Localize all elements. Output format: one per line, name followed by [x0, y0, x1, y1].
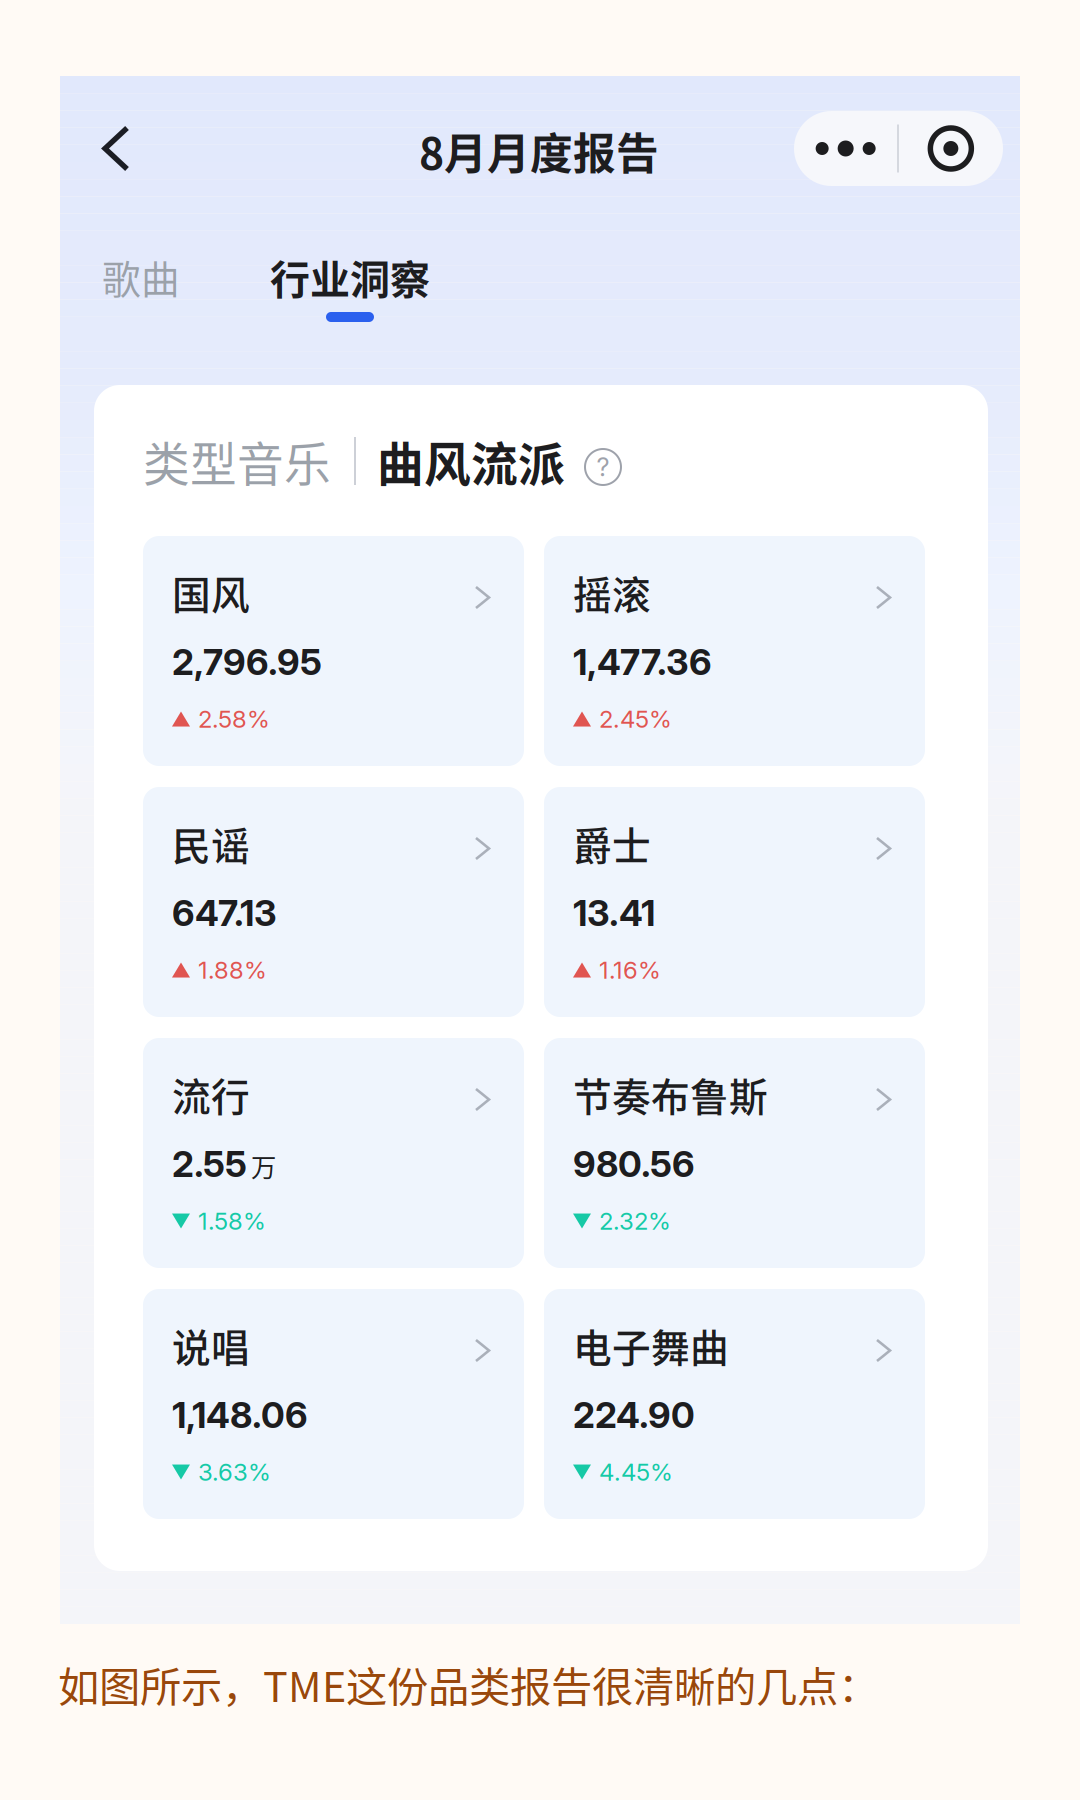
staticText: 224.90 [573, 1393, 695, 1437]
staticText: 2,796.95 [172, 640, 322, 684]
button[interactable]: More [794, 111, 897, 186]
staticText: 如图所示，TME这份品类报告很清晰的几点： [58, 1654, 879, 1714]
staticText: 说唱 [172, 1317, 250, 1373]
staticText: 980.56 [573, 1142, 695, 1186]
staticText: 2.45% [599, 704, 672, 733]
staticText: 电子舞曲 [573, 1317, 729, 1373]
staticText: 2.32% [599, 1206, 671, 1235]
staticText: 爵士 [573, 815, 651, 871]
staticText: 1.88% [198, 955, 267, 984]
staticText: 类型音乐 [143, 427, 331, 495]
staticText: 行业洞察 [270, 248, 430, 306]
button[interactable]: 民谣 [143, 787, 524, 1017]
staticText: 民谣 [172, 815, 250, 871]
staticText: 摇滚 [573, 564, 651, 620]
staticText: 13.41 [573, 891, 655, 935]
staticText: 647.13 [172, 891, 277, 935]
staticText: 4.45% [599, 1457, 673, 1486]
button[interactable]: 说唱 [143, 1289, 524, 1519]
button[interactable]: 爵士 [544, 787, 925, 1017]
staticText: 1,148.06 [172, 1393, 308, 1437]
button[interactable]: 行业洞察 [270, 250, 430, 322]
staticText: 2.55 [172, 1142, 247, 1186]
staticText: 万 [251, 1148, 276, 1184]
button[interactable]: Help [565, 424, 637, 498]
staticText: 流行 [172, 1066, 250, 1122]
staticText: 8月月度报告 [419, 120, 659, 182]
staticText: 3.63% [198, 1457, 271, 1486]
button[interactable]: 国风 [143, 536, 524, 766]
staticText: ? [596, 452, 609, 482]
button[interactable]: Close [899, 111, 1003, 186]
staticText: 歌曲 [102, 249, 180, 305]
staticText: 节奏布鲁斯 [573, 1066, 768, 1122]
staticText: 1,477.36 [573, 640, 712, 684]
staticText: 1.58% [198, 1206, 266, 1235]
button[interactable]: 摇滚 [544, 536, 925, 766]
button[interactable]: 电子舞曲 [544, 1289, 925, 1519]
staticText: 2.58% [198, 704, 270, 733]
button[interactable]: 节奏布鲁斯 [544, 1038, 925, 1268]
button[interactable]: 歌曲 [102, 250, 200, 304]
staticText: 国风 [172, 564, 250, 620]
staticText: 曲风流派 [377, 427, 565, 495]
staticText: 1.16% [599, 955, 661, 984]
button[interactable]: 流行 [143, 1038, 524, 1268]
button[interactable]: Back [84, 111, 148, 186]
